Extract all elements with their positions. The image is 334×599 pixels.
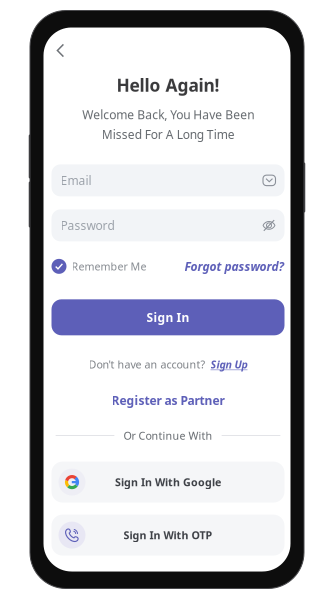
button[interactable]: Back	[49, 38, 71, 62]
staticText: Forgot password?	[184, 258, 284, 274]
button[interactable]: Sign In	[51, 299, 284, 335]
staticText: Welcome Back, You Have Been Missed For A…	[82, 106, 254, 142]
staticText: Sign In With Google	[115, 475, 221, 489]
staticText: Register as Partner	[111, 392, 224, 408]
button[interactable]: Sign In With OTP	[51, 515, 284, 556]
button[interactable]: Remember Me	[51, 259, 146, 274]
button[interactable]: Sign In With Google	[51, 462, 284, 503]
staticText: Or Continue With	[123, 428, 212, 443]
staticText: Sign In	[146, 309, 189, 325]
staticText: Don't have an account?	[88, 357, 205, 371]
staticText: Hello Again!	[116, 73, 219, 96]
button[interactable]: Forgot password?	[184, 258, 284, 274]
staticText: Email	[60, 172, 91, 188]
staticText: Remember Me	[71, 259, 146, 273]
button[interactable]: Sign Up	[210, 357, 247, 371]
staticText: Sign In With OTP	[123, 528, 212, 542]
staticText: Password	[60, 217, 114, 233]
staticText: Sign Up	[210, 357, 247, 371]
button[interactable]: Register as Partner	[51, 392, 284, 408]
